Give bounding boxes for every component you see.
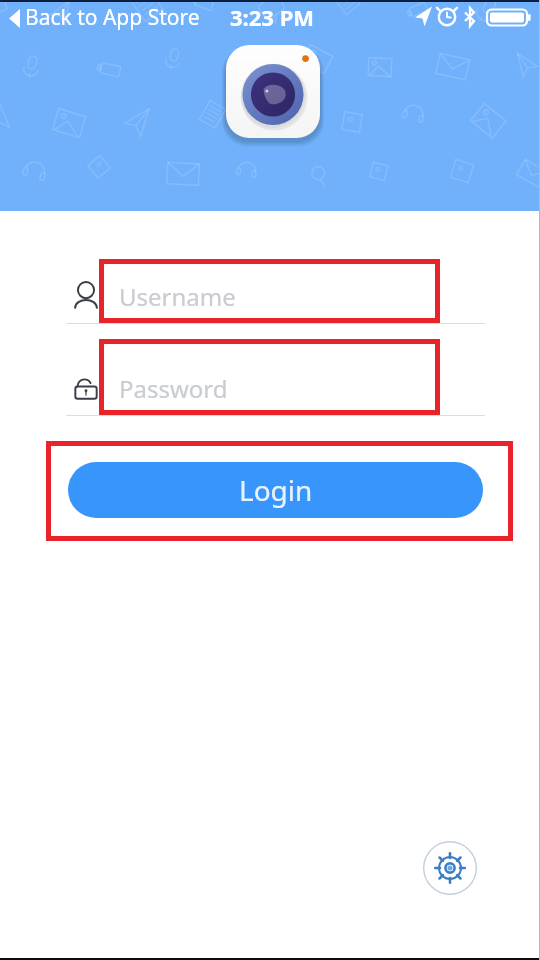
button[interactable]: Settings (422, 840, 478, 896)
staticText: Password (119, 372, 228, 405)
staticText: Username (119, 280, 236, 313)
staticText: Login (239, 471, 313, 509)
button[interactable]: Login (68, 462, 483, 518)
button[interactable]: Username (66, 262, 485, 324)
staticText: 3:23 PM (230, 2, 315, 32)
button[interactable]: Password (66, 354, 485, 416)
staticText: Back to App Store (25, 3, 200, 32)
